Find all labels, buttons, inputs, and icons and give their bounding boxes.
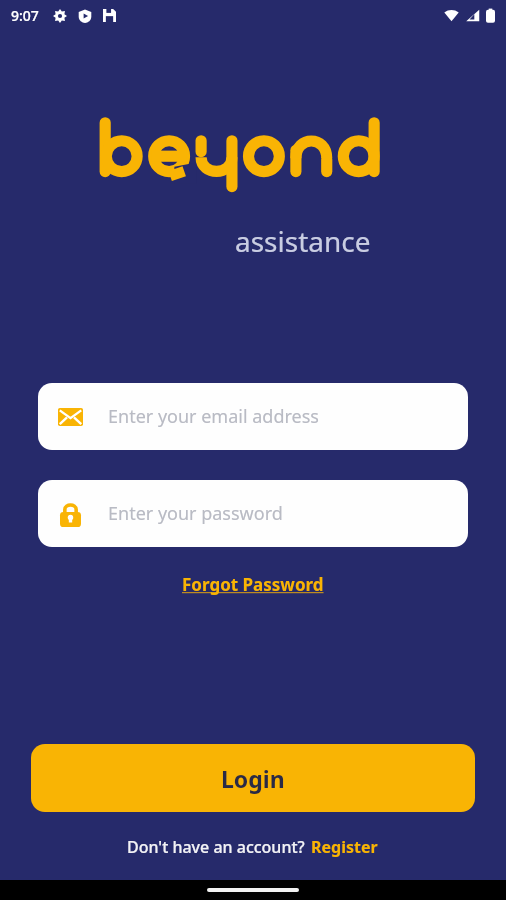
other: Password [57,501,83,527]
staticText: Register [311,836,378,858]
button[interactable]: Login [31,744,475,812]
staticText: Don't have an account? [127,836,309,858]
staticText: Forgot Password [182,573,324,596]
staticText: Enter your password [108,501,283,526]
staticText: Enter your email address [108,404,319,429]
staticText: 9:07 [11,6,39,25]
button[interactable]: Password [38,480,468,547]
button[interactable]: Forgot Password [178,571,328,598]
staticText: assistance [235,222,371,260]
other: Email [57,404,83,430]
staticText: Login [221,763,285,794]
button[interactable]: Email [38,383,468,450]
button[interactable]: Register [309,834,380,860]
